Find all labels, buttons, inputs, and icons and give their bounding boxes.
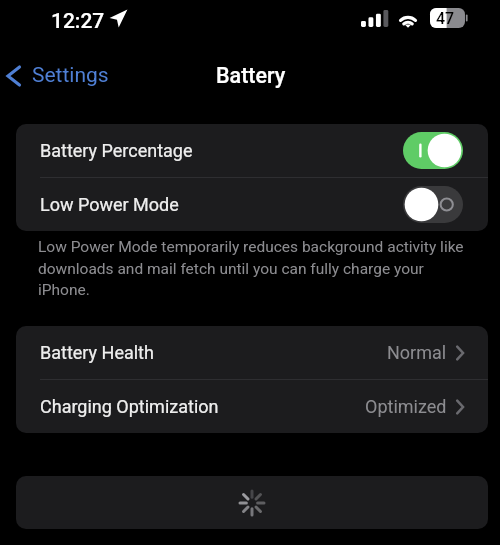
staticText: Optimized [365,396,447,417]
staticText: Charging Optimization [40,396,219,417]
staticText: Battery Health [40,342,154,363]
staticText: Battery [216,63,286,88]
button[interactable]: Switch off [403,186,463,223]
button[interactable]: Battery Percentage [16,124,488,177]
button[interactable]: Settings [1,58,119,93]
staticText: Normal [387,342,447,363]
button[interactable]: Switch on [403,132,463,169]
staticText: Low Power Mode [40,194,179,215]
button[interactable]: Battery Health [16,326,488,379]
staticText: 47 [436,9,455,28]
staticText: Settings [32,63,109,88]
button[interactable]: Low Power Mode [16,178,488,231]
staticText: 12:27 [51,9,105,34]
button[interactable]: Charging Optimization [16,380,488,433]
staticText: Low Power Mode temporarily reduces backg… [38,238,468,298]
staticText: Battery Percentage [40,140,193,161]
